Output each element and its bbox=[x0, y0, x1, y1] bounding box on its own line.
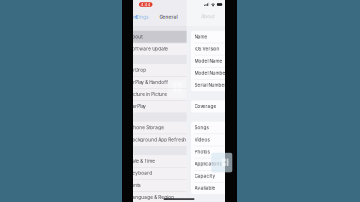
staticText: 4:44 bbox=[141, 2, 151, 7]
button[interactable]: iPhone Storage bbox=[126, 122, 209, 134]
staticText: iPhone Storage bbox=[129, 125, 164, 130]
staticText: AirPlay & Handoff bbox=[129, 79, 168, 85]
button[interactable]: Songs bbox=[191, 122, 274, 134]
button[interactable]: Capacity bbox=[191, 170, 274, 182]
button[interactable]: Applications bbox=[191, 158, 274, 170]
staticText: Songs bbox=[194, 125, 208, 130]
staticText: Photos bbox=[194, 149, 209, 155]
staticText: Model Number bbox=[194, 70, 227, 76]
button[interactable]: Name bbox=[191, 31, 274, 43]
button[interactable]: Photos bbox=[191, 146, 274, 158]
staticText: Applications bbox=[194, 161, 221, 167]
staticText: Coverage bbox=[194, 104, 216, 109]
staticText: Available bbox=[194, 185, 215, 191]
staticText: Date & Time bbox=[129, 158, 155, 164]
button[interactable]: Picture in Picture bbox=[126, 88, 209, 100]
button[interactable]: CarPlay bbox=[126, 100, 209, 112]
staticText: Background App Refresh bbox=[129, 137, 186, 143]
staticText: Model Name bbox=[194, 58, 222, 64]
staticText: Videos bbox=[194, 137, 209, 143]
button[interactable]: Fonts bbox=[126, 179, 209, 191]
staticText: Keyboard bbox=[129, 170, 152, 176]
button[interactable]: Background App Refresh bbox=[126, 134, 209, 146]
staticText: iOS Version bbox=[194, 46, 219, 52]
staticText: Software Update bbox=[129, 46, 168, 52]
button[interactable]: Language & Region bbox=[126, 191, 209, 202]
staticText: CarPlay bbox=[129, 104, 146, 109]
button[interactable]: Model Name bbox=[191, 55, 274, 67]
button[interactable]: AirDrop bbox=[126, 64, 209, 76]
staticText: Language & Region bbox=[129, 195, 174, 200]
button[interactable]: Videos bbox=[191, 134, 274, 146]
button[interactable]: Serial Number bbox=[191, 79, 274, 91]
button[interactable]: About bbox=[126, 31, 209, 43]
button[interactable]: Keyboard bbox=[126, 167, 209, 179]
staticText: General bbox=[159, 14, 177, 20]
button[interactable]: Software Update bbox=[126, 43, 209, 55]
staticText: Settings bbox=[130, 14, 149, 20]
button[interactable]: Coverage bbox=[191, 100, 274, 112]
button[interactable]: AirPlay & Handoff bbox=[126, 76, 209, 88]
staticText: About bbox=[129, 34, 142, 40]
button[interactable]: Date & Time bbox=[126, 155, 209, 167]
staticText: Serial Number bbox=[194, 82, 226, 88]
button[interactable]: Available bbox=[191, 182, 274, 194]
staticText: AirDrop bbox=[129, 67, 146, 73]
button[interactable]: Model Number bbox=[191, 67, 274, 79]
button[interactable]: Settings bbox=[130, 13, 152, 22]
staticText: Fonts bbox=[129, 182, 140, 188]
staticText: Picture in Picture bbox=[129, 92, 167, 97]
button[interactable]: iOS Version bbox=[191, 43, 274, 55]
staticText: Capacity bbox=[194, 173, 215, 179]
staticText: Name bbox=[194, 34, 207, 40]
staticText: About bbox=[201, 14, 215, 19]
